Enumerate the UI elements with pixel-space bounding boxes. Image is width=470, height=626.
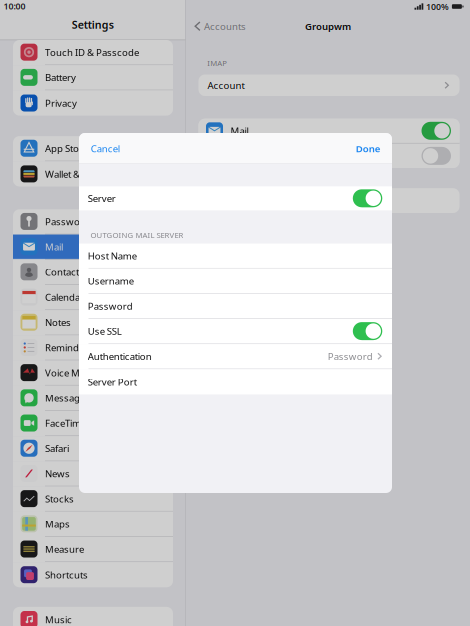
button[interactable]: Passwords	[13, 209, 173, 234]
button[interactable]: Music	[13, 607, 173, 626]
button[interactable]: Stocks	[13, 486, 173, 512]
button[interactable]: Done	[322, 133, 392, 164]
staticText: Music	[45, 613, 72, 626]
staticText: Mail	[230, 124, 248, 137]
button[interactable]: Messages	[13, 386, 173, 411]
button[interactable]: Host Name	[79, 244, 392, 269]
staticText: Messages	[45, 391, 90, 404]
button[interactable]: Measure	[13, 537, 173, 562]
staticText: Maps	[45, 517, 70, 530]
button[interactable]: Mail	[198, 119, 459, 143]
staticText: Password	[88, 299, 133, 312]
button[interactable]: Safari	[13, 436, 173, 461]
staticText: Settings	[72, 17, 114, 32]
button[interactable]: Shortcuts	[13, 562, 173, 587]
staticText: Wallet & Apple Pay	[45, 167, 125, 180]
button[interactable]: Password	[79, 294, 392, 319]
staticText: Username	[88, 274, 134, 287]
button[interactable]: Touch ID & Passcode	[13, 40, 173, 65]
staticText: Battery	[45, 71, 76, 84]
staticText: Server	[88, 192, 116, 205]
button[interactable]: Server	[79, 186, 392, 210]
button[interactable]: Server Port	[79, 369, 392, 394]
button[interactable]: App Store	[13, 136, 173, 161]
staticText: IMAP	[207, 58, 227, 68]
staticText: Host Name	[88, 249, 137, 262]
staticText: Authentication	[88, 350, 152, 363]
staticText: Groupwm	[305, 20, 351, 33]
staticText: Privacy	[45, 96, 77, 110]
button[interactable]: Privacy	[13, 90, 173, 116]
staticText: FaceTime	[45, 416, 86, 430]
staticText: 10:00	[3, 0, 25, 12]
staticText: Calendar	[45, 290, 84, 304]
staticText: Contacts	[45, 265, 84, 278]
button[interactable]: Use SSL	[79, 319, 392, 344]
staticText: Measure	[45, 542, 84, 556]
button[interactable]: Username	[79, 269, 392, 294]
staticText: Shortcuts	[45, 568, 88, 581]
button[interactable]: Authentication	[79, 344, 392, 369]
staticText: Voice Memos	[45, 366, 105, 379]
button[interactable]: Accounts	[186, 15, 266, 37]
staticText: Server Port	[88, 375, 137, 388]
button[interactable]: Cancel	[79, 133, 149, 164]
staticText: Cancel	[91, 142, 120, 155]
staticText: OUTGOING MAIL SERVER	[90, 230, 183, 240]
button[interactable]: Notes	[13, 310, 173, 335]
staticText: Touch ID & Passcode	[45, 46, 139, 59]
staticText: Reminders	[45, 341, 93, 354]
staticText: App Store	[45, 142, 88, 155]
button[interactable]: Reminders	[13, 335, 173, 360]
staticText: Stocks	[45, 492, 74, 505]
button[interactable]: Mail	[13, 234, 173, 260]
staticText: 100%	[426, 0, 449, 12]
staticText: Notes	[45, 316, 71, 329]
staticText: Accounts	[204, 20, 246, 33]
button[interactable]: Advanced settings	[198, 188, 459, 213]
button[interactable]: Maps	[13, 512, 173, 537]
staticText: Use SSL	[88, 325, 122, 338]
button[interactable]: Wallet & Apple Pay	[13, 161, 173, 186]
staticText: News	[45, 467, 70, 480]
staticText: Passwords	[45, 215, 95, 228]
staticText: Safari	[45, 442, 69, 455]
button[interactable]: Notes	[198, 144, 459, 168]
staticText: Done	[356, 142, 381, 155]
staticText: Mail	[45, 240, 63, 253]
button[interactable]: Calendar	[13, 285, 173, 310]
staticText: Account	[207, 79, 244, 92]
button[interactable]: Account	[198, 74, 459, 96]
button[interactable]: News	[13, 461, 173, 486]
button[interactable]: Contacts	[13, 260, 173, 285]
button[interactable]: FaceTime	[13, 411, 173, 436]
button[interactable]: Battery	[13, 65, 173, 90]
staticText: Password	[328, 350, 373, 363]
button[interactable]: Voice Memos	[13, 360, 173, 386]
